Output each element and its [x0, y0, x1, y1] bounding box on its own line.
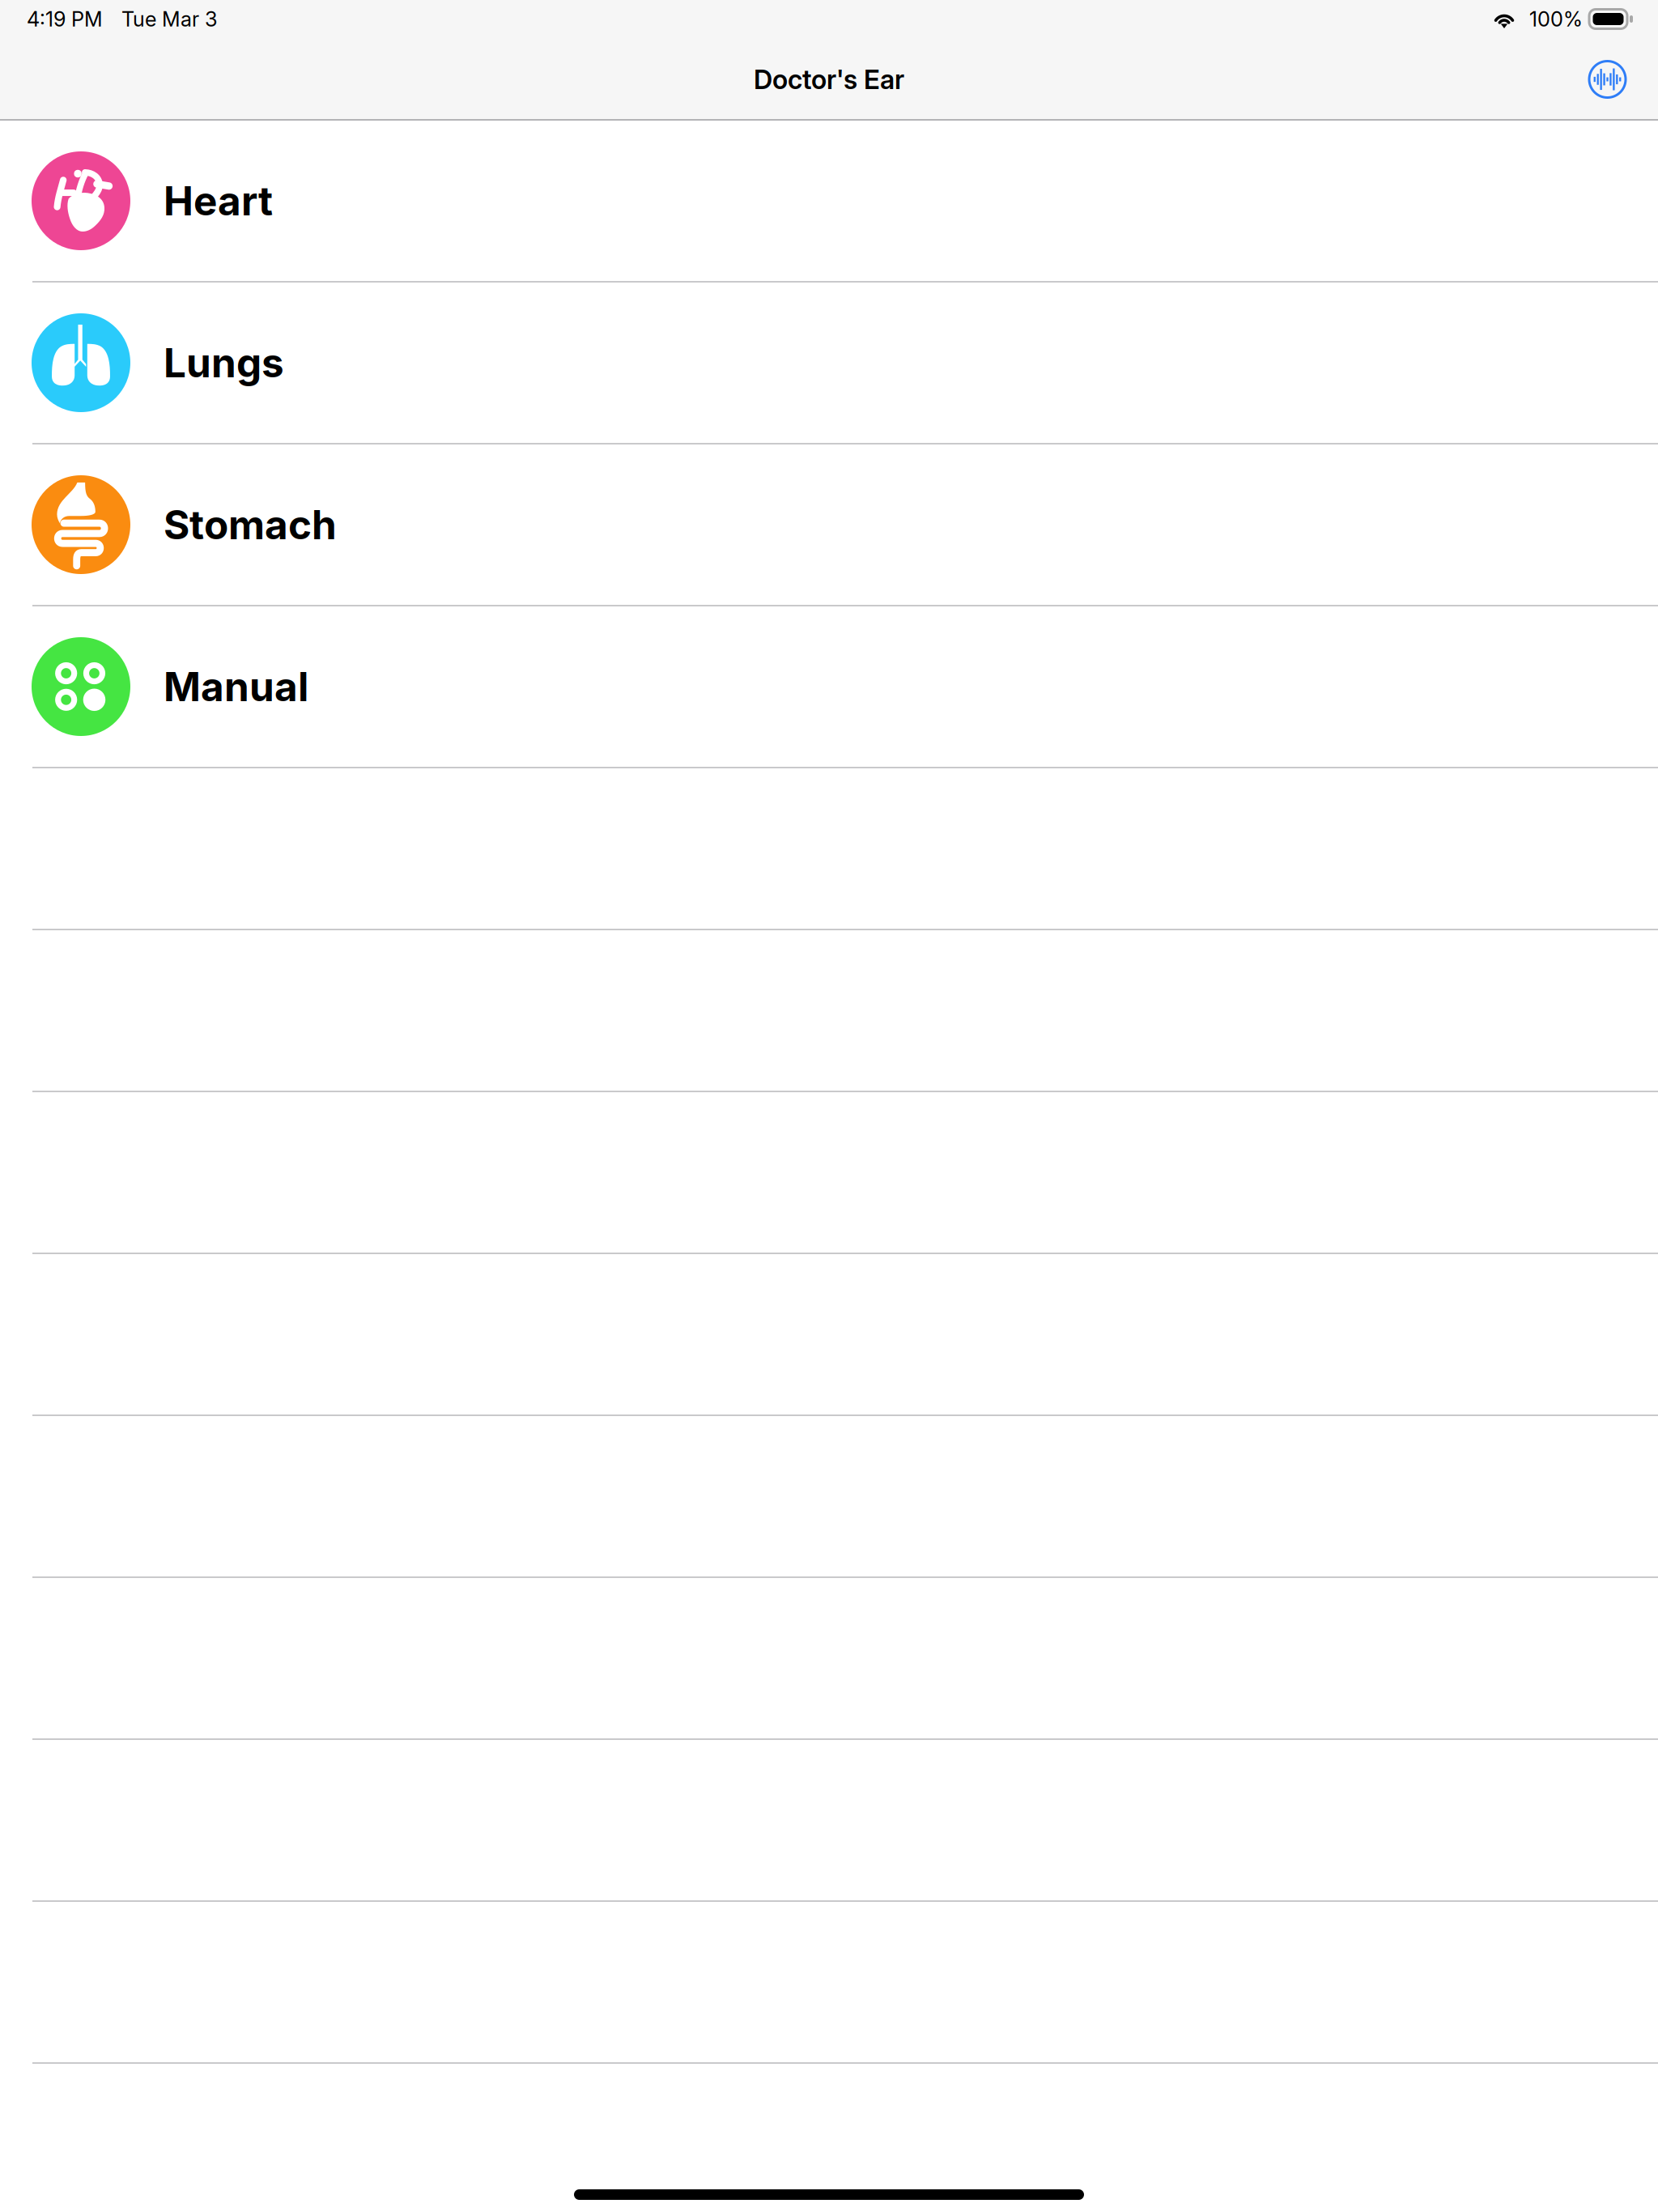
staticText: Tue Mar 3 [121, 7, 218, 31]
staticText: Lungs [164, 339, 284, 387]
staticText: Stomach [164, 501, 337, 549]
staticText: Manual [164, 662, 308, 711]
staticText: 4:19 PM [27, 7, 103, 31]
button[interactable]: Stomach [0, 445, 1658, 605]
button[interactable]: Lungs [0, 283, 1658, 443]
staticText: 100% [1529, 7, 1583, 31]
button[interactable]: Manual [0, 606, 1658, 767]
staticText: Doctor's Ear [754, 63, 904, 95]
button[interactable]: Recordings [1575, 47, 1658, 112]
staticText: Heart [164, 177, 273, 225]
button[interactable]: Heart [0, 121, 1658, 281]
